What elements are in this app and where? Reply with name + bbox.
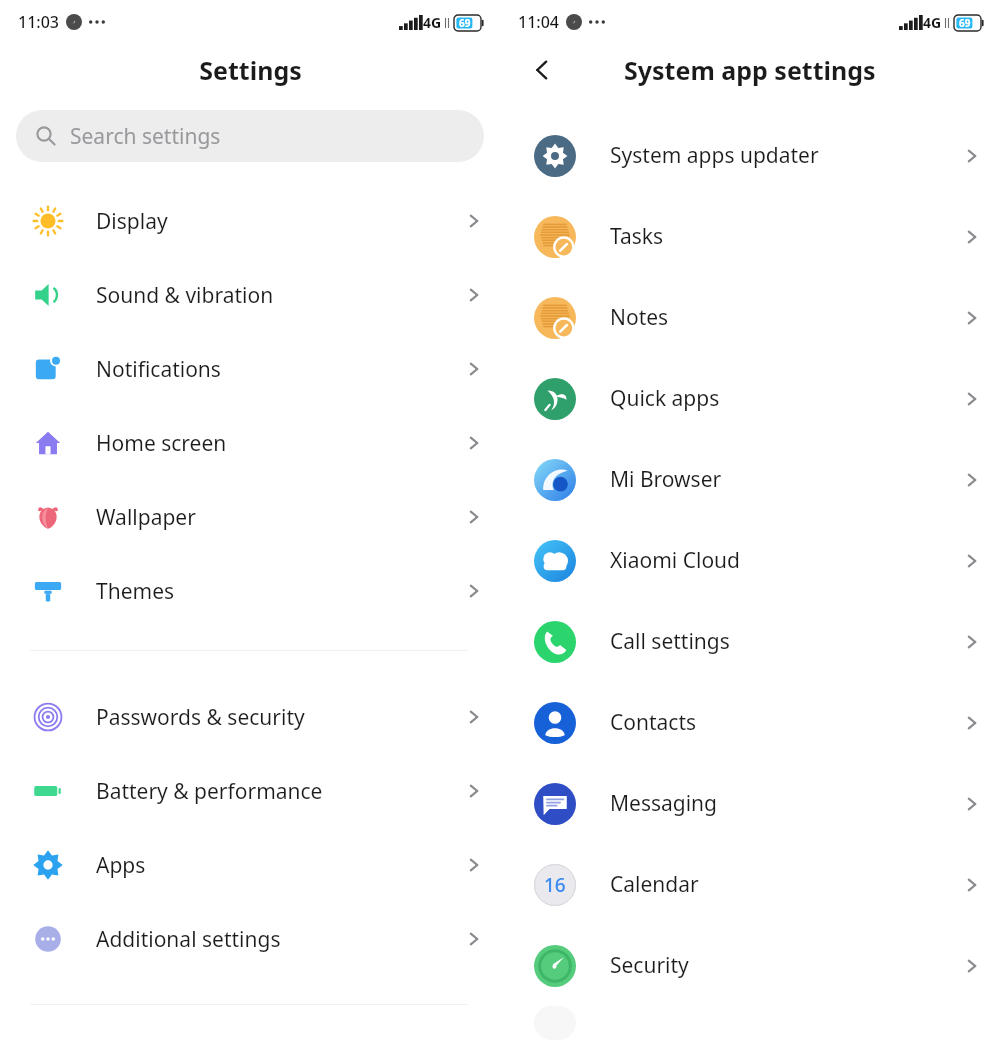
staticText: Passwords & security: [96, 703, 448, 732]
staticText: Themes: [96, 577, 448, 606]
staticText: Notes: [610, 303, 944, 332]
staticText: Tasks: [610, 222, 944, 251]
staticText: Sound & vibration: [96, 281, 448, 310]
button[interactable]: System apps updater: [500, 115, 1000, 196]
button[interactable]: Additional settings: [0, 902, 500, 976]
button[interactable]: Security: [500, 925, 1000, 1006]
staticText: 4G: [423, 13, 442, 32]
staticText: Notifications: [96, 355, 448, 384]
button[interactable]: Wallpaper: [0, 480, 500, 554]
button[interactable]: Passwords & security: [0, 680, 500, 754]
staticText: Security: [610, 951, 944, 980]
staticText: 11:04: [518, 11, 559, 33]
button[interactable]: Apps: [0, 828, 500, 902]
button[interactable]: Notes: [500, 277, 1000, 358]
staticText: Contacts: [610, 708, 944, 737]
button[interactable]: Contacts: [500, 682, 1000, 763]
staticText: Additional settings: [96, 925, 448, 954]
button[interactable]: Messaging: [500, 763, 1000, 844]
staticText: Battery & performance: [96, 777, 448, 806]
button[interactable]: Search settings: [16, 110, 484, 162]
staticText: Mi Browser: [610, 465, 944, 494]
button[interactable]: Notifications: [0, 332, 500, 406]
button[interactable]: Themes: [0, 554, 500, 628]
button[interactable]: Display: [0, 184, 500, 258]
staticText: Wallpaper: [96, 503, 448, 532]
staticText: 69: [959, 16, 971, 30]
button[interactable]: Tasks: [500, 196, 1000, 277]
staticText: System app settings: [624, 53, 876, 87]
staticText: Call settings: [610, 627, 944, 656]
button[interactable]: Back: [522, 50, 562, 90]
button[interactable]: Xiaomi Cloud: [500, 520, 1000, 601]
staticText: 16: [544, 872, 566, 898]
staticText: 69: [459, 16, 471, 30]
button[interactable]: Battery & performance: [0, 754, 500, 828]
staticText: Home screen: [96, 429, 448, 458]
button[interactable]: Call settings: [500, 601, 1000, 682]
button[interactable]: Mi Browser: [500, 439, 1000, 520]
staticText: Quick apps: [610, 384, 944, 413]
staticText: 11:03: [18, 11, 59, 33]
staticText: Display: [96, 207, 448, 236]
button[interactable]: Home screen: [0, 406, 500, 480]
staticText: Xiaomi Cloud: [610, 546, 944, 575]
staticText: Settings: [199, 53, 302, 87]
staticText: System apps updater: [610, 141, 944, 170]
button[interactable]: Sound & vibration: [0, 258, 500, 332]
staticText: Calendar: [610, 870, 944, 899]
button[interactable]: Quick apps: [500, 358, 1000, 439]
staticText: Apps: [96, 851, 448, 880]
staticText: Messaging: [610, 789, 944, 818]
button[interactable]: 16: [500, 844, 1000, 925]
staticText: 4G: [923, 13, 942, 32]
staticText: Search settings: [70, 122, 221, 151]
